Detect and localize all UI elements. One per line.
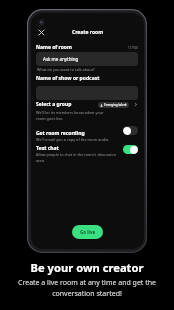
button[interactable]: Text chat [36, 145, 138, 163]
staticText: We'll let its members know when your roo… [36, 110, 104, 121]
staticText: Be your own creator [0, 260, 174, 275]
staticText: Create room [31, 29, 144, 36]
staticText: Name of room [36, 44, 72, 51]
staticText: Name of show or podcast [36, 75, 100, 82]
button[interactable]: Select a group [36, 101, 138, 108]
staticText: What do you want to talk about? [37, 67, 95, 72]
button[interactable]: Close [36, 27, 47, 38]
staticText: Ask me anything [43, 56, 79, 62]
staticText: 11/100 [128, 46, 138, 50]
staticText: Text chat [36, 145, 59, 152]
button[interactable]: Get room recording [36, 130, 138, 142]
staticText: Create a live room at any time and get t… [0, 278, 174, 298]
button[interactable]: Ask me anything [36, 52, 138, 66]
button[interactable]: Go live [72, 225, 103, 239]
staticText: We'll email you a copy of the room audio… [36, 137, 110, 142]
staticText: Select a group [36, 101, 72, 108]
staticText: Get room recording [36, 130, 85, 137]
staticText: Allow people to chat in the room's discu… [36, 152, 116, 163]
staticText: Go live [80, 229, 96, 235]
staticText: Emerging talent [104, 103, 127, 107]
